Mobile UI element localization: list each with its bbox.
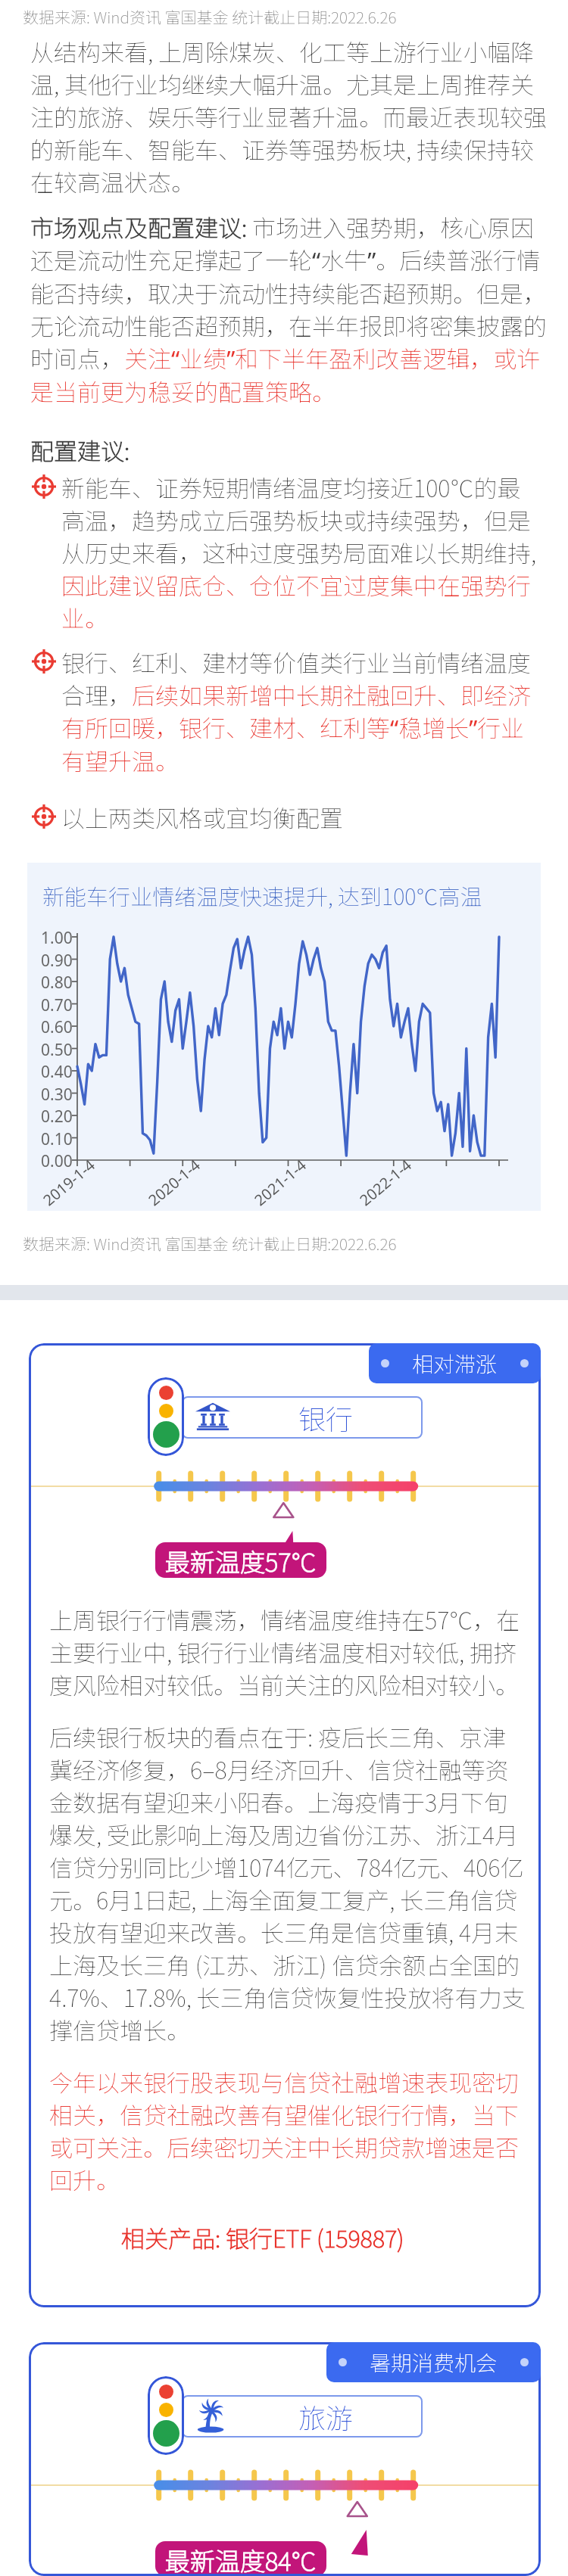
staticText: 旅游: [298, 2397, 354, 2436]
staticText: 2022-1-4: [355, 1155, 416, 1210]
button[interactable]: temperature level: [148, 2376, 184, 2455]
staticText: 0.00: [41, 1150, 73, 1172]
staticText: 2021-1-4: [250, 1155, 311, 1210]
staticText: 0.70: [41, 994, 73, 1016]
other: 旅游: [195, 2398, 231, 2434]
staticText: 0.80: [41, 972, 73, 994]
staticText: 银行: [298, 1398, 354, 1437]
staticText: 新能车、证券短期情绪温度均接近100℃的最高温，趋势成立后强势板块或持续强势，但…: [61, 470, 541, 634]
staticText: 上周银行行情震荡，情绪温度维持在57℃，在主要行业中, 银行行业情绪温度相对较低…: [49, 1602, 528, 1701]
other: 银行: [195, 1399, 231, 1436]
staticText: 0.60: [41, 1016, 73, 1038]
staticText: 相对滞涨: [412, 1348, 498, 1379]
staticText: 从结构来看, 上周除煤炭、化工等上游行业小幅降温, 其他行业均继续大幅升温。尤其…: [30, 34, 551, 198]
staticText: 市场观点及配置建议: 市场进入强势期，核心原因还是流动性充足撑起了一轮“水牛”。…: [30, 210, 551, 408]
staticText: 新能车行业情绪温度快速提升, 达到100℃高温: [42, 879, 482, 911]
staticText: 0.90: [41, 950, 73, 972]
staticText: 0.50: [41, 1039, 73, 1061]
button[interactable]: 相对滞涨: [369, 1343, 541, 1383]
button[interactable]: 暑期消费机会: [326, 2342, 541, 2382]
staticText: 暑期消费机会: [370, 2347, 498, 2378]
staticText: 数据来源: Wind资讯 富国基金 统计截止日期:2022.6.26: [23, 5, 397, 28]
button[interactable]: temperature level: [148, 1377, 184, 1456]
staticText: 银行、红利、建材等价值类行业当前情绪温度合理，后续如果新增中长期社融回升、即经济…: [61, 645, 541, 777]
button[interactable]: 最新温度57℃: [155, 1542, 326, 1578]
staticText: 后续银行板块的看点在于: 疫后长三角、京津冀经济修复，6–8月经济回升、信贷社融…: [49, 1719, 528, 2046]
staticText: 最新温度57℃: [165, 1543, 317, 1576]
staticText: 2020-1-4: [144, 1155, 205, 1210]
staticText: 0.30: [41, 1084, 73, 1106]
staticText: 数据来源: Wind资讯 富国基金 统计截止日期:2022.6.26: [23, 1232, 397, 1255]
staticText: 0.40: [41, 1061, 73, 1083]
staticText: 配置建议:: [30, 433, 130, 467]
button[interactable]: 银行: [29, 1343, 541, 2307]
button[interactable]: 旅游: [29, 2342, 541, 2576]
button[interactable]: 最新温度84℃: [155, 2541, 326, 2576]
staticText: 最新温度84℃: [165, 2542, 317, 2574]
staticText: 以上两类风格或宜均衡配置: [61, 800, 343, 834]
staticText: 0.10: [41, 1128, 73, 1150]
staticText: 1.00: [41, 927, 73, 949]
staticText: 相关产品: 银行ETF (159887): [121, 2220, 404, 2254]
staticText: 0.20: [41, 1106, 73, 1128]
staticText: 今年以来银行股表现与信贷社融增速表现密切相关，信贷社融改善有望催化银行行情，当下…: [49, 2064, 528, 2196]
staticText: 2019-1-4: [39, 1155, 99, 1210]
